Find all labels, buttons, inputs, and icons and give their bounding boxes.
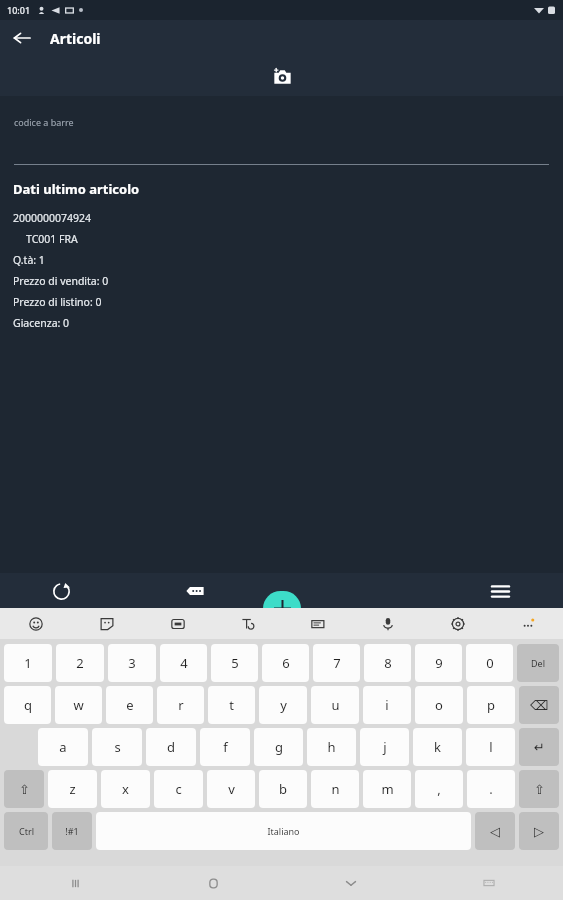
staticText: q — [24, 696, 32, 714]
button[interactable]: ⌫ — [519, 686, 559, 724]
button[interactable]: e — [106, 686, 153, 724]
staticText: l — [489, 738, 493, 756]
button[interactable]: m — [363, 770, 411, 808]
staticText: 4 — [180, 654, 188, 672]
button[interactable]: Notes — [178, 574, 212, 608]
staticText: i — [385, 696, 389, 714]
button[interactable]: 3 — [108, 644, 156, 682]
staticText: , — [437, 780, 441, 798]
button[interactable]: i — [363, 686, 411, 724]
button[interactable]: o — [415, 686, 463, 724]
button[interactable]: Keyboard layout — [469, 866, 509, 900]
button[interactable]: ⇧ — [4, 770, 44, 808]
staticText: f — [223, 738, 228, 756]
staticText: r — [178, 696, 184, 714]
staticText: Prezzo di listino: 0 — [13, 295, 102, 309]
button[interactable]: ⇧ — [519, 770, 559, 808]
button[interactable]: Del — [517, 644, 559, 682]
button[interactable]: Back — [0, 20, 44, 56]
button[interactable]: 8 — [364, 644, 411, 682]
button[interactable]: q — [4, 686, 51, 724]
button[interactable]: h — [307, 728, 356, 766]
staticText: e — [126, 696, 134, 714]
staticText: 7 — [333, 654, 341, 672]
button[interactable]: Voice input — [353, 608, 423, 639]
staticText: Dati ultimo articolo — [13, 180, 140, 198]
button[interactable]: k — [413, 728, 462, 766]
button[interactable]: ◁ — [475, 812, 515, 850]
button[interactable]: w — [55, 686, 102, 724]
button[interactable]: Ctrl — [4, 812, 48, 850]
staticText: Giacenza: 0 — [13, 316, 70, 330]
button[interactable]: Emoji — [0, 608, 71, 639]
staticText: b — [279, 780, 287, 798]
button[interactable]: Settings — [423, 608, 493, 639]
staticText: 3 — [128, 654, 136, 672]
button[interactable]: a — [38, 728, 88, 766]
staticText: 8 — [384, 654, 392, 672]
button[interactable]: Stickers — [71, 608, 142, 639]
staticText: 10:01 — [7, 4, 31, 16]
button[interactable]: b — [259, 770, 307, 808]
staticText: Articoli — [50, 29, 101, 48]
button[interactable]: GIF — [142, 608, 213, 639]
staticText: codice a barre — [14, 116, 74, 128]
button[interactable]: 6 — [262, 644, 309, 682]
button[interactable]: 1 — [4, 644, 52, 682]
button[interactable]: . — [467, 770, 515, 808]
staticText: Italiano — [267, 825, 300, 837]
button[interactable]: Text style — [213, 608, 283, 639]
staticText: s — [114, 738, 121, 756]
button[interactable]: !#1 — [52, 812, 92, 850]
button[interactable]: 5 — [211, 644, 258, 682]
button[interactable]: Scan barcode with camera — [265, 59, 299, 93]
button[interactable]: More — [493, 608, 563, 639]
button[interactable]: t — [208, 686, 255, 724]
staticText: o — [435, 696, 443, 714]
staticText: 2000000074924 — [13, 211, 92, 225]
button[interactable]: Hide keyboard — [331, 866, 371, 900]
button[interactable]: Menu — [483, 574, 517, 608]
button[interactable]: ↵ — [519, 728, 559, 766]
button[interactable]: d — [146, 728, 196, 766]
staticText: u — [331, 696, 340, 714]
button[interactable]: v — [207, 770, 255, 808]
button[interactable]: Recents — [55, 866, 95, 900]
staticText: x — [122, 780, 129, 798]
button[interactable]: 0 — [466, 644, 513, 682]
button[interactable]: z — [48, 770, 97, 808]
button[interactable]: , — [415, 770, 463, 808]
staticText: w — [73, 696, 84, 714]
button[interactable]: c — [154, 770, 203, 808]
button[interactable]: s — [92, 728, 142, 766]
button[interactable]: p — [467, 686, 515, 724]
button[interactable]: f — [200, 728, 250, 766]
staticText: c — [175, 780, 182, 798]
button[interactable]: g — [254, 728, 303, 766]
button[interactable]: 7 — [313, 644, 360, 682]
button[interactable]: r — [157, 686, 204, 724]
button[interactable]: y — [259, 686, 307, 724]
button[interactable]: l — [466, 728, 515, 766]
button[interactable]: Home — [193, 866, 233, 900]
button[interactable]: j — [360, 728, 409, 766]
staticText: k — [434, 738, 441, 756]
staticText: z — [69, 780, 76, 798]
button[interactable]: x — [101, 770, 150, 808]
button[interactable]: 2 — [56, 644, 104, 682]
staticText: ⌫ — [530, 698, 549, 713]
button[interactable]: n — [311, 770, 359, 808]
button[interactable]: Refresh — [44, 574, 78, 608]
staticText: 0 — [486, 654, 494, 672]
button[interactable]: 4 — [160, 644, 207, 682]
button[interactable]: Clipboard — [283, 608, 353, 639]
staticText: 5 — [231, 654, 239, 672]
staticText: Del — [531, 657, 545, 669]
button[interactable]: u — [311, 686, 359, 724]
button[interactable]: Add — [263, 591, 301, 626]
staticText: p — [487, 696, 495, 714]
button[interactable]: ▷ — [519, 812, 559, 850]
staticText: n — [331, 780, 340, 798]
button[interactable]: Italiano — [96, 812, 471, 850]
button[interactable]: 9 — [415, 644, 462, 682]
